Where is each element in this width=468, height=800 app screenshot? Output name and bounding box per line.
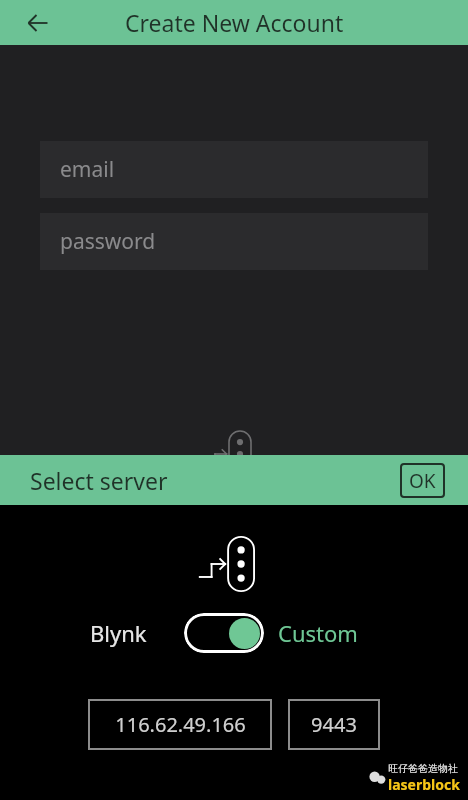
staticText: Custom [278, 618, 378, 648]
staticText: Create New Account [125, 7, 344, 38]
staticText: OK [409, 468, 436, 494]
staticText: Blynk [90, 618, 170, 648]
button[interactable]: password [40, 213, 428, 270]
staticText: Select server [30, 465, 168, 496]
button[interactable]: Back [16, 1, 60, 45]
staticText: 旺仔爸爸造物社 [388, 762, 458, 775]
staticText: laserblock [388, 775, 460, 794]
staticText: password [60, 227, 156, 256]
button[interactable]: email [40, 141, 428, 198]
button[interactable]: 116.62.49.166 [88, 699, 272, 750]
staticText: 9443 [311, 711, 357, 738]
staticText: email [60, 155, 115, 184]
button[interactable]: OK [400, 463, 445, 498]
button[interactable]: Server type toggle [184, 613, 264, 653]
button[interactable]: 9443 [288, 699, 380, 750]
staticText: 116.62.49.166 [115, 711, 246, 738]
